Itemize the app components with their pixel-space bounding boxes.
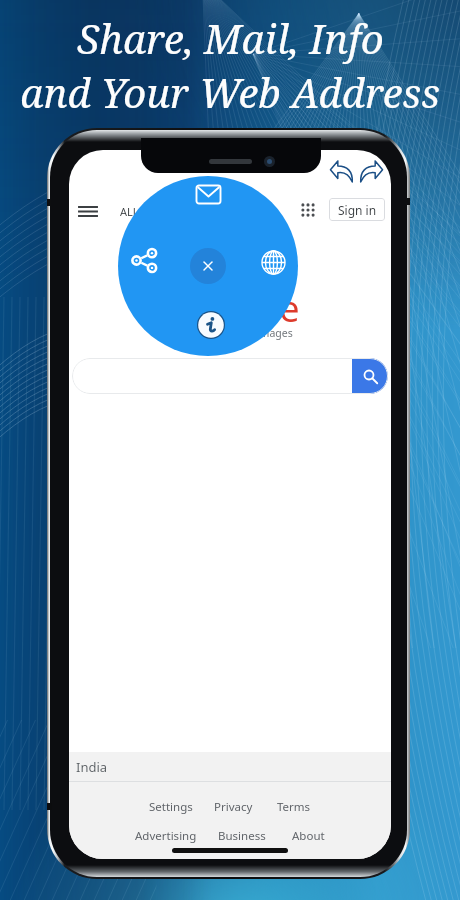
button[interactable]: Close menu xyxy=(190,248,226,284)
button[interactable]: About xyxy=(291,826,326,846)
button[interactable]: Advertising xyxy=(134,826,198,846)
staticText: Business xyxy=(218,828,266,844)
button[interactable]: Share xyxy=(132,248,157,273)
staticText: Google xyxy=(178,284,300,333)
button[interactable]: Search xyxy=(72,358,388,394)
button[interactable]: Settings xyxy=(148,797,194,817)
button[interactable]: Info xyxy=(197,311,225,339)
staticText: Advertising xyxy=(135,828,197,844)
button[interactable]: Sign in xyxy=(329,198,385,221)
button[interactable]: Google apps xyxy=(295,197,321,223)
button[interactable]: Forward xyxy=(358,158,384,184)
staticText: About xyxy=(292,828,325,844)
button[interactable]: Search xyxy=(352,358,388,394)
button[interactable]: Website xyxy=(261,250,286,275)
button[interactable]: Business xyxy=(217,826,267,846)
staticText: Privacy xyxy=(214,799,253,815)
button[interactable]: Menu xyxy=(74,197,102,225)
button[interactable]: Back xyxy=(328,158,354,184)
button[interactable]: Privacy xyxy=(213,797,254,817)
button[interactable]: Mail xyxy=(195,181,222,208)
staticText: Settings xyxy=(149,799,193,815)
staticText: Sign in xyxy=(338,202,377,218)
staticText: and Your Web Address xyxy=(20,65,440,119)
staticText: Share, Mail, Info xyxy=(77,11,384,65)
staticText: ALL xyxy=(120,204,139,219)
staticText: Terms xyxy=(277,799,311,815)
staticText: India xyxy=(76,758,108,776)
button[interactable]: Terms xyxy=(276,797,312,817)
staticText: Images xyxy=(256,326,293,340)
